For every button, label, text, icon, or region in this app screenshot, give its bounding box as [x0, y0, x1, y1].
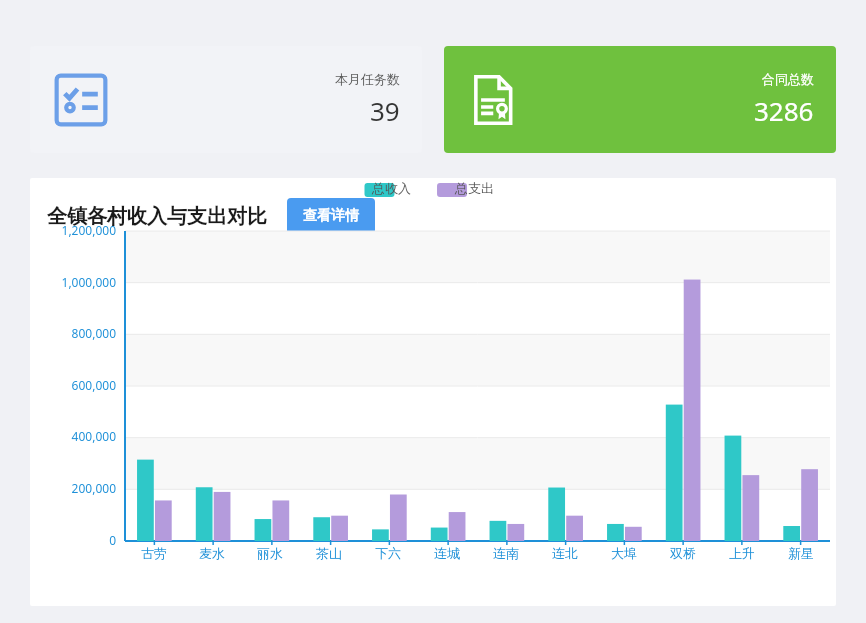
staticText: 0 [30, 532, 116, 548]
staticText: 查看详情 [303, 207, 359, 225]
staticText: 连城 [434, 545, 460, 561]
other: Contracts [466, 71, 524, 129]
staticText: 茶山 [316, 545, 342, 561]
staticText: 丽水 [257, 545, 283, 561]
button[interactable]: Contracts [444, 46, 836, 153]
staticText: 全镇各村收入与支出对比 [47, 204, 267, 229]
staticText: 上升 [729, 545, 755, 561]
staticText: 总支出 [455, 180, 494, 196]
button[interactable]: 查看详情 [287, 198, 375, 234]
staticText: 新星 [788, 545, 814, 561]
staticText: 总收入 [372, 180, 411, 196]
staticText: 双桥 [670, 545, 696, 561]
staticText: 麦水 [199, 545, 225, 561]
staticText: 连南 [493, 545, 519, 561]
staticText: 200,000 [30, 480, 116, 496]
staticText: 400,000 [30, 428, 116, 444]
staticText: 800,000 [30, 325, 116, 341]
staticText: 合同总数 [762, 71, 814, 87]
button[interactable]: Tasks [30, 46, 422, 153]
other: Tasks [52, 71, 110, 129]
staticText: 连北 [552, 545, 578, 561]
staticText: 古劳 [141, 545, 167, 561]
staticText: 600,000 [30, 377, 116, 393]
staticText: 1,200,000 [30, 222, 116, 238]
staticText: 3286 [754, 93, 814, 128]
staticText: 下六 [375, 545, 401, 561]
staticText: 1,000,000 [30, 274, 116, 290]
staticText: 大埠 [611, 545, 637, 561]
staticText: 39 [370, 93, 400, 128]
staticText: 本月任务数 [335, 71, 400, 87]
